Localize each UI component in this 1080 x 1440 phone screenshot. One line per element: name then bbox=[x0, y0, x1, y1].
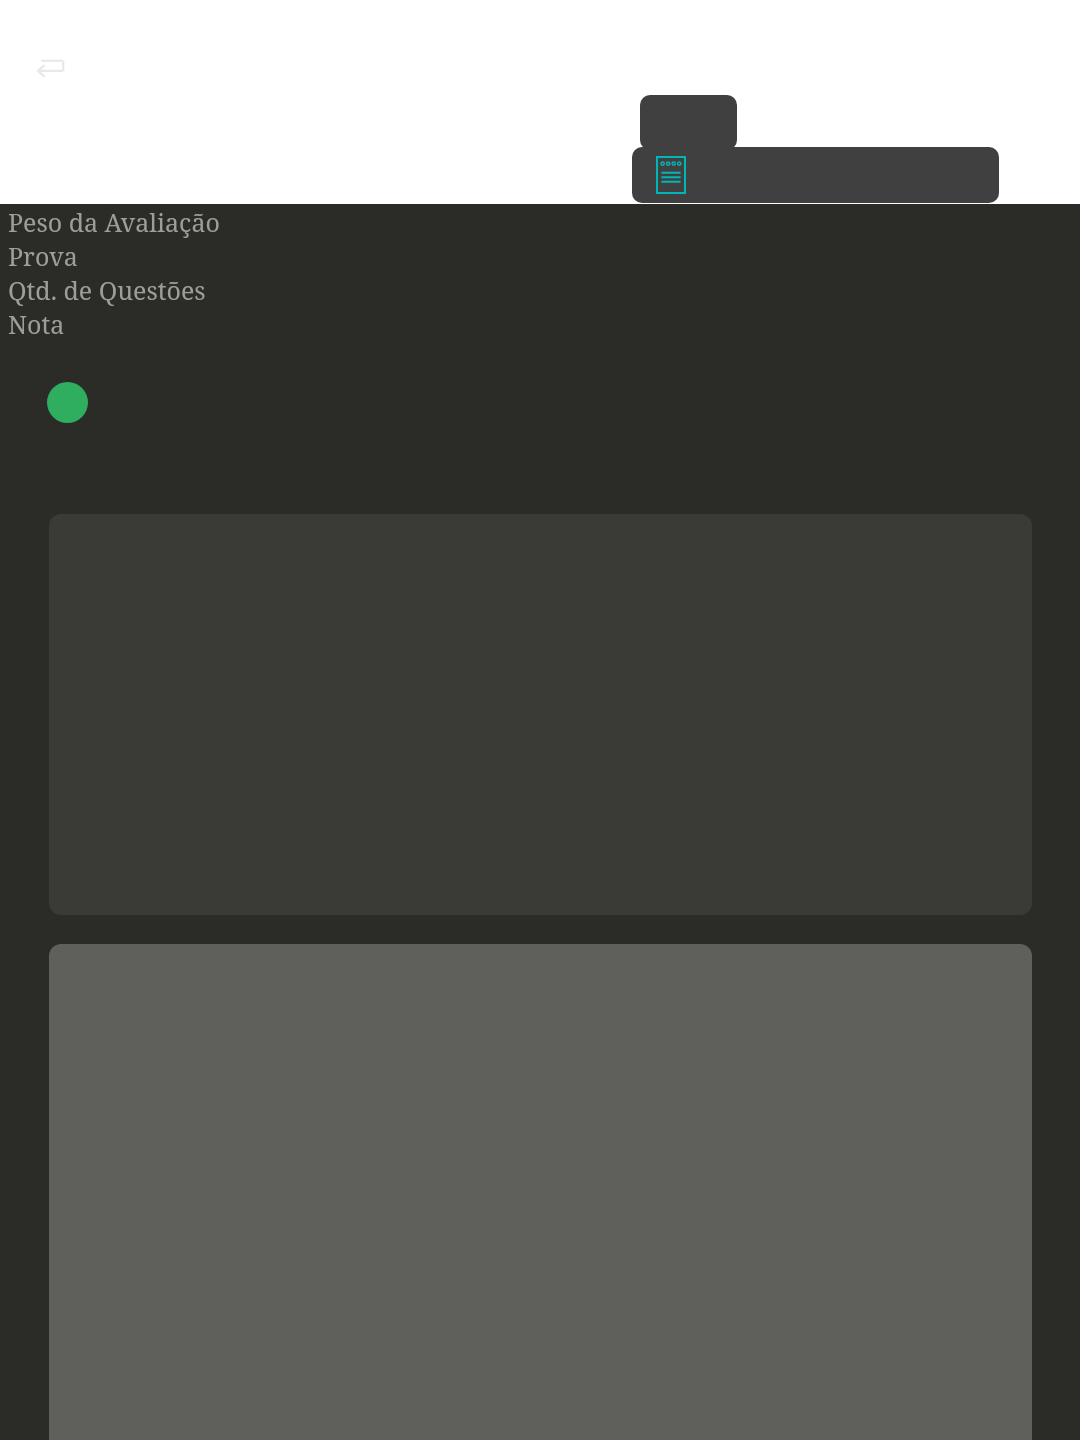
staticText: Nota bbox=[8, 307, 65, 341]
button[interactable]: Voltar bbox=[28, 50, 72, 86]
button[interactable]: Aba bbox=[640, 95, 737, 150]
staticText: Prova bbox=[8, 239, 78, 273]
button[interactable]: Notas bbox=[656, 156, 686, 194]
button[interactable]: Status bbox=[47, 382, 88, 423]
button[interactable]: Notas bbox=[632, 147, 999, 203]
staticText: Peso da Avaliação bbox=[8, 205, 220, 239]
staticText: Qtd. de Questões bbox=[8, 273, 206, 307]
